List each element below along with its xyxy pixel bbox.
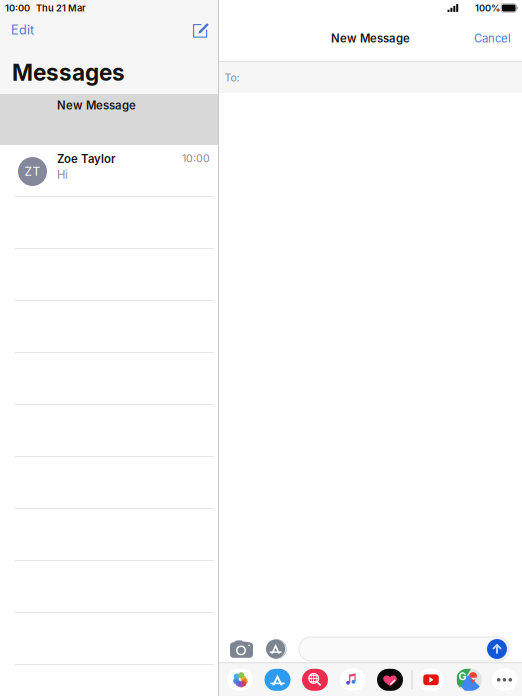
staticText: New Message	[331, 32, 410, 45]
button[interactable]: Photos	[227, 669, 253, 691]
staticText: To:	[224, 71, 239, 84]
staticText: Cancel	[474, 32, 511, 45]
staticText: Thu 21 Mar	[36, 2, 86, 14]
button[interactable]: Music	[339, 669, 365, 691]
button[interactable]: More	[491, 669, 517, 691]
button[interactable]: Cancel	[464, 23, 522, 53]
button[interactable]: App Store	[264, 669, 290, 691]
staticText: Edit	[11, 22, 34, 38]
button[interactable]: Maps	[456, 669, 482, 691]
button[interactable]: To:	[219, 62, 522, 93]
staticText: New Message	[57, 99, 136, 112]
staticText: 10:00	[182, 152, 210, 165]
staticText: Messages	[12, 59, 125, 86]
button[interactable]: Camera	[230, 637, 253, 661]
button[interactable]: New Message	[0, 94, 218, 145]
button[interactable]: iMessage Apps	[266, 637, 286, 661]
staticText: 10:00	[5, 2, 30, 14]
button[interactable]: Images	[302, 669, 328, 691]
button[interactable]: Edit	[0, 16, 42, 44]
button[interactable]: Send	[487, 639, 509, 659]
button[interactable]: Digital Touch	[377, 669, 403, 691]
button[interactable]: ZT	[0, 145, 218, 197]
staticText: 100%	[475, 2, 500, 14]
button[interactable]: New Message	[189, 16, 216, 44]
button[interactable]: YouTube	[418, 669, 444, 691]
staticText: Zoe Taylor	[57, 152, 115, 166]
staticText: G	[458, 670, 466, 683]
staticText: ZT	[24, 164, 40, 179]
staticText: Hi	[57, 168, 68, 181]
